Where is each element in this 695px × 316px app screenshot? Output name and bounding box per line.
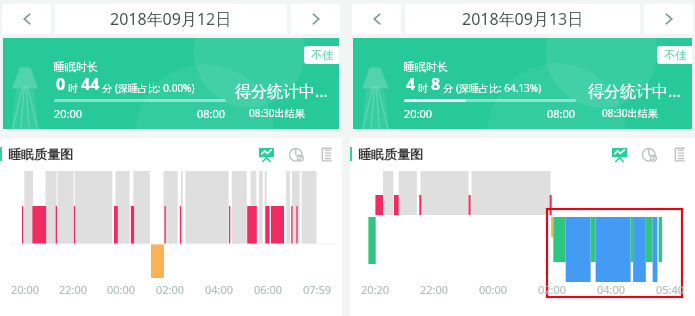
button[interactable]: Pie view <box>286 144 306 164</box>
button[interactable]: Next day <box>644 4 693 34</box>
button[interactable]: Previous day <box>352 4 401 34</box>
staticText: 20:00 <box>11 282 40 297</box>
staticText: 08:00 <box>197 106 226 121</box>
staticText: (深睡占比: 64.13%) <box>456 81 542 95</box>
staticText: 08:00 <box>547 106 576 121</box>
staticText: 得分统计中... <box>588 80 681 102</box>
staticText: (深睡占比: 0.00%) <box>115 81 195 95</box>
button[interactable]: Next day <box>291 4 340 34</box>
staticText: 睡眠时长 <box>54 60 98 74</box>
staticText: 04:00 <box>597 282 626 297</box>
staticText: 20:20 <box>361 282 390 297</box>
staticText: 2018年09月13日 <box>462 8 584 30</box>
staticText: 得分统计中... <box>235 80 328 102</box>
button[interactable]: Chart view <box>256 144 276 164</box>
staticText: 08:30出结果 <box>602 106 658 120</box>
staticText: 22:00 <box>59 282 88 297</box>
staticText: 00:00 <box>479 282 508 297</box>
staticText: 睡眠质量图 <box>358 146 423 162</box>
staticText: 02:00 <box>538 282 567 297</box>
staticText: 8 <box>431 73 441 95</box>
staticText: 02:00 <box>156 282 185 297</box>
staticText: 不佳 <box>664 48 686 62</box>
staticText: 20:00 <box>404 106 433 121</box>
staticText: 00:00 <box>107 282 136 297</box>
staticText: 时 <box>68 82 78 95</box>
button[interactable]: Chart view <box>609 144 629 164</box>
staticText: 05:40 <box>656 282 685 297</box>
staticText: 睡眠时长 <box>404 60 448 74</box>
staticText: 时 <box>418 82 428 95</box>
staticText: 08:30出结果 <box>249 106 305 120</box>
staticText: 4 <box>406 73 416 95</box>
staticText: 0 <box>56 73 66 95</box>
staticText: 44 <box>81 73 100 95</box>
button[interactable]: 不佳 <box>657 46 692 64</box>
staticText: 20:00 <box>54 106 83 121</box>
button[interactable]: 不佳 <box>304 46 339 64</box>
button[interactable]: List view <box>669 144 689 164</box>
staticText: 睡眠质量图 <box>8 146 73 162</box>
staticText: 分 <box>443 82 453 95</box>
staticText: 22:00 <box>420 282 449 297</box>
button[interactable]: List view <box>316 144 336 164</box>
staticText: 04:00 <box>205 282 234 297</box>
button[interactable]: Previous day <box>2 4 51 34</box>
button[interactable]: Pie view <box>639 144 659 164</box>
staticText: 分 <box>102 82 112 95</box>
staticText: 不佳 <box>311 48 333 62</box>
staticText: 07:59 <box>303 282 332 297</box>
staticText: 06:00 <box>254 282 283 297</box>
staticText: 2018年09月12日 <box>110 8 232 30</box>
